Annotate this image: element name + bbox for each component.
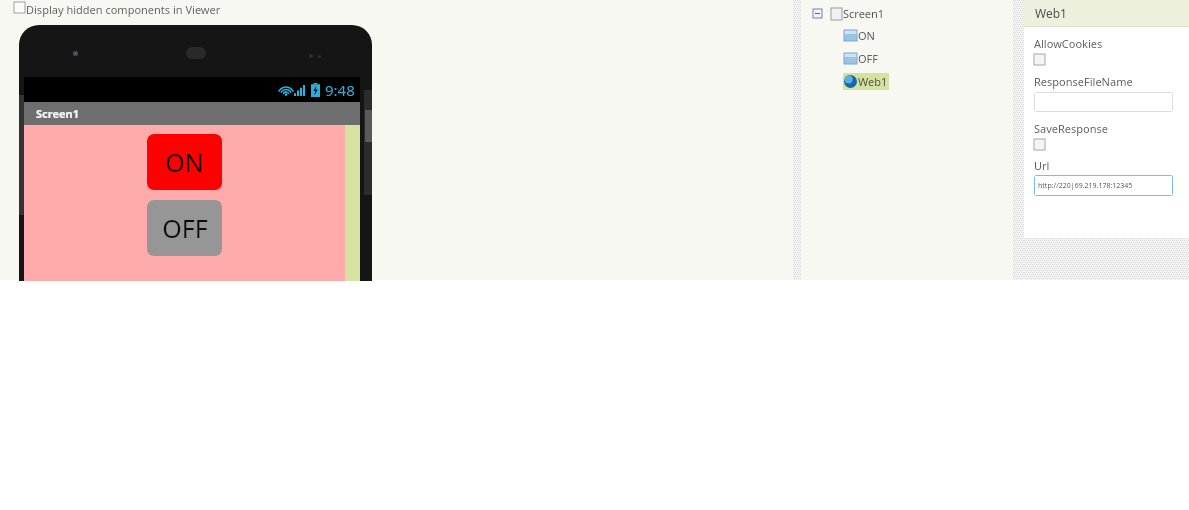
staticText: OFF [858,51,879,66]
button[interactable]: Display hidden components in Viewer [14,2,25,13]
button[interactable]: ON [844,28,875,43]
button[interactable]: Screen1 [831,6,885,21]
staticText: OFF [162,211,208,245]
staticText: 9:48 [325,80,355,100]
staticText: Url [1034,158,1050,173]
staticText: Screen1 [843,6,885,21]
button[interactable]: AllowCookies [1034,54,1045,65]
staticText: http://220|69.219.178:12345 [1038,181,1133,191]
button[interactable]: OFF [147,200,222,256]
staticText: SaveResponse [1034,121,1109,136]
staticText: ON [165,145,204,179]
button[interactable]: http://220|69.219.178:12345 [1034,175,1173,196]
button[interactable]: ON [147,134,222,190]
staticText: AllowCookies [1034,36,1103,51]
button[interactable]: Web1 [844,74,888,89]
button[interactable]: ResponseFileName [1034,92,1173,112]
staticText: Web1 [858,74,888,89]
button[interactable]: Collapse Screen1 [813,9,822,18]
button[interactable]: SaveResponse [1034,139,1045,150]
staticText: Display hidden components in Viewer [26,2,221,17]
staticText: ResponseFileName [1034,74,1133,89]
staticText: Screen1 [36,106,80,121]
button[interactable]: OFF [844,51,879,66]
staticText: Web1 [1035,5,1067,21]
staticText: ON [858,28,875,43]
